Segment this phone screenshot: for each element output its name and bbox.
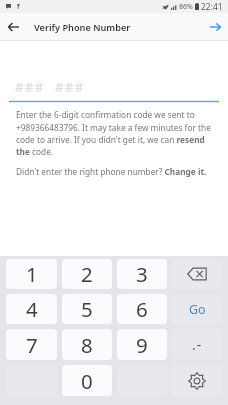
button[interactable]: 6 (117, 294, 167, 324)
staticText: 0 (81, 367, 93, 395)
staticText: .- (192, 335, 203, 354)
staticText: 8 (81, 331, 93, 359)
staticText: 9 (136, 331, 148, 359)
staticText: 86% (179, 2, 193, 12)
button[interactable]: 1 (6, 259, 57, 289)
button[interactable]: 3 (117, 259, 167, 289)
staticText: ### ### (15, 78, 85, 96)
button[interactable]: Back (0, 13, 26, 41)
staticText: Didn't enter the right phone number? Cha… (16, 166, 207, 177)
staticText: 5 (81, 295, 93, 323)
button[interactable]: Symbols (172, 329, 222, 360)
staticText: 2 (81, 260, 93, 288)
button[interactable]: Backspace (172, 259, 222, 289)
button[interactable]: Go (172, 294, 222, 324)
button[interactable]: 7 (6, 329, 57, 360)
staticText: Verify Phone Number (34, 21, 131, 34)
button[interactable]: 5 (62, 294, 112, 324)
staticText: 7 (26, 331, 38, 359)
staticText: Enter the 6-digit confirmation code we s… (16, 109, 216, 157)
button[interactable]: 8 (62, 329, 112, 360)
button[interactable]: Keyboard settings (172, 365, 222, 396)
button[interactable]: 9 (117, 329, 167, 360)
staticText: 1 (26, 260, 38, 288)
button[interactable]: 2 (62, 259, 112, 289)
staticText: 3 (136, 260, 148, 288)
staticText: 22:41 (201, 1, 223, 13)
staticText: 4 (26, 295, 38, 323)
button[interactable]: Next (202, 13, 228, 41)
button[interactable]: 0 (62, 365, 112, 396)
button[interactable]: 4 (6, 294, 57, 324)
staticText: Go (189, 301, 206, 318)
staticText: 6 (136, 295, 148, 323)
